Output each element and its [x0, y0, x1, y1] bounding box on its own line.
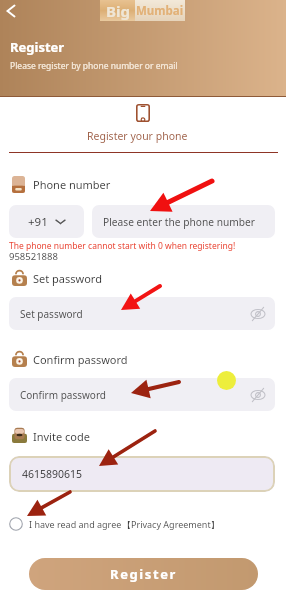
staticText: +91 [28, 214, 48, 230]
staticText: 【Privacy Agreement】 [122, 518, 220, 530]
staticText: Register [110, 565, 177, 583]
staticText: Register [10, 38, 65, 56]
staticText: Confirm password [33, 352, 128, 367]
staticText: I have read and agree [29, 518, 122, 530]
staticText: Invite code [33, 429, 90, 444]
button[interactable]: Show password [250, 387, 266, 403]
staticText: Set password [20, 307, 83, 321]
staticText: 958521888 [9, 250, 58, 263]
staticText: Confirm password [20, 388, 106, 402]
staticText: Mumbai [136, 3, 184, 19]
button[interactable]: Register [29, 558, 258, 590]
button[interactable]: I have read and agree [9, 515, 220, 533]
staticText: Please enter the phone number [103, 215, 255, 229]
staticText: Register your phone [87, 129, 188, 143]
button[interactable]: Please enter the phone number [92, 205, 275, 238]
button[interactable]: Show password [250, 306, 266, 322]
button[interactable]: Back [2, 1, 24, 23]
staticText: Phone number [33, 177, 111, 192]
staticText: 4615890615 [22, 467, 83, 481]
staticText: Big [106, 1, 130, 21]
staticText: Please register by phone number or email [10, 60, 178, 72]
button[interactable]: +91 [9, 205, 84, 238]
button[interactable]: Set password [9, 297, 275, 330]
button[interactable]: 4615890615 [9, 456, 275, 492]
staticText: The phone number cannot start with 0 whe… [9, 240, 236, 252]
staticText: Set password [33, 271, 102, 286]
button[interactable]: Confirm password [9, 378, 275, 411]
